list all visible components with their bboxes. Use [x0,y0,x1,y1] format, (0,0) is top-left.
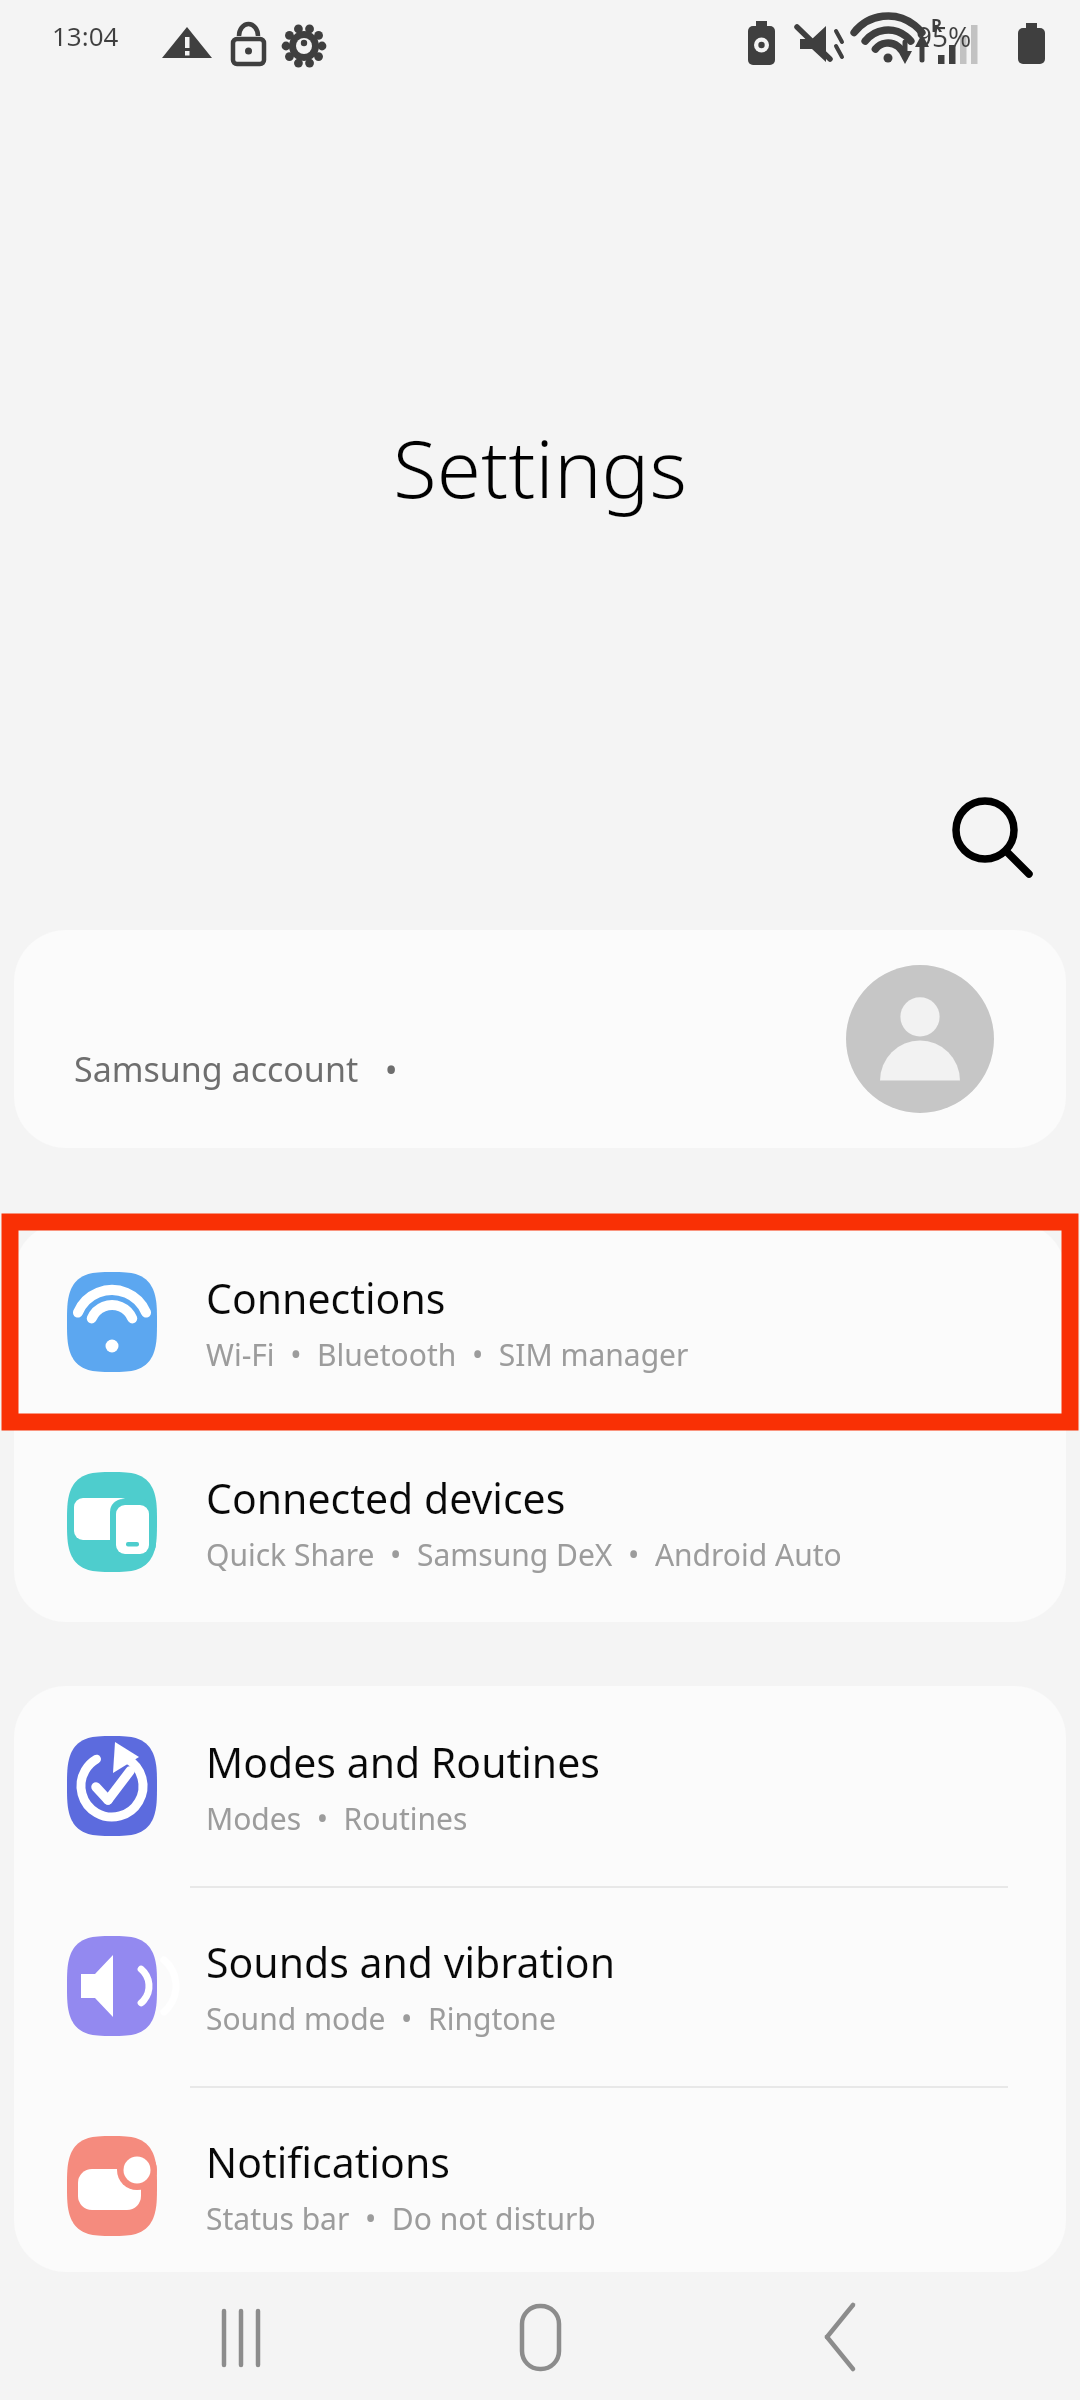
staticText: 95% [916,17,972,55]
staticText: Status bar • Do not disturb [206,2198,596,2239]
staticText: Modes and Routines [206,1734,600,1790]
button[interactable]: Search settings [925,768,1045,888]
button[interactable]: Back [780,2280,900,2400]
staticText: Notifications [206,2134,450,2190]
staticText: R [931,14,943,37]
button[interactable]: Home [480,2280,600,2400]
staticText: Connected devices [206,1470,566,1526]
staticText: Samsung account • [74,1046,398,1092]
button[interactable]: Modes and Routines [14,1686,1066,1886]
staticText: Sounds and vibration [206,1934,615,1990]
button[interactable]: Connections [14,1222,1066,1422]
button[interactable]: Recent apps [180,2280,300,2400]
staticText: Wi-Fi • Bluetooth • SIM manager [206,1334,689,1375]
button[interactable]: Connected devices [14,1422,1066,1622]
staticText: Settings [393,412,687,521]
staticText: Quick Share • Samsung DeX • Android Auto [206,1534,842,1575]
staticText: Modes • Routines [206,1798,468,1839]
button[interactable]: Notifications [14,2086,1066,2272]
staticText: Sound mode • Ringtone [206,1998,556,2039]
button[interactable]: Samsung account • [14,930,1066,1148]
staticText: 13:04 [52,18,119,53]
button[interactable]: Sounds and vibration [14,1886,1066,2086]
staticText: Connections [206,1270,446,1326]
